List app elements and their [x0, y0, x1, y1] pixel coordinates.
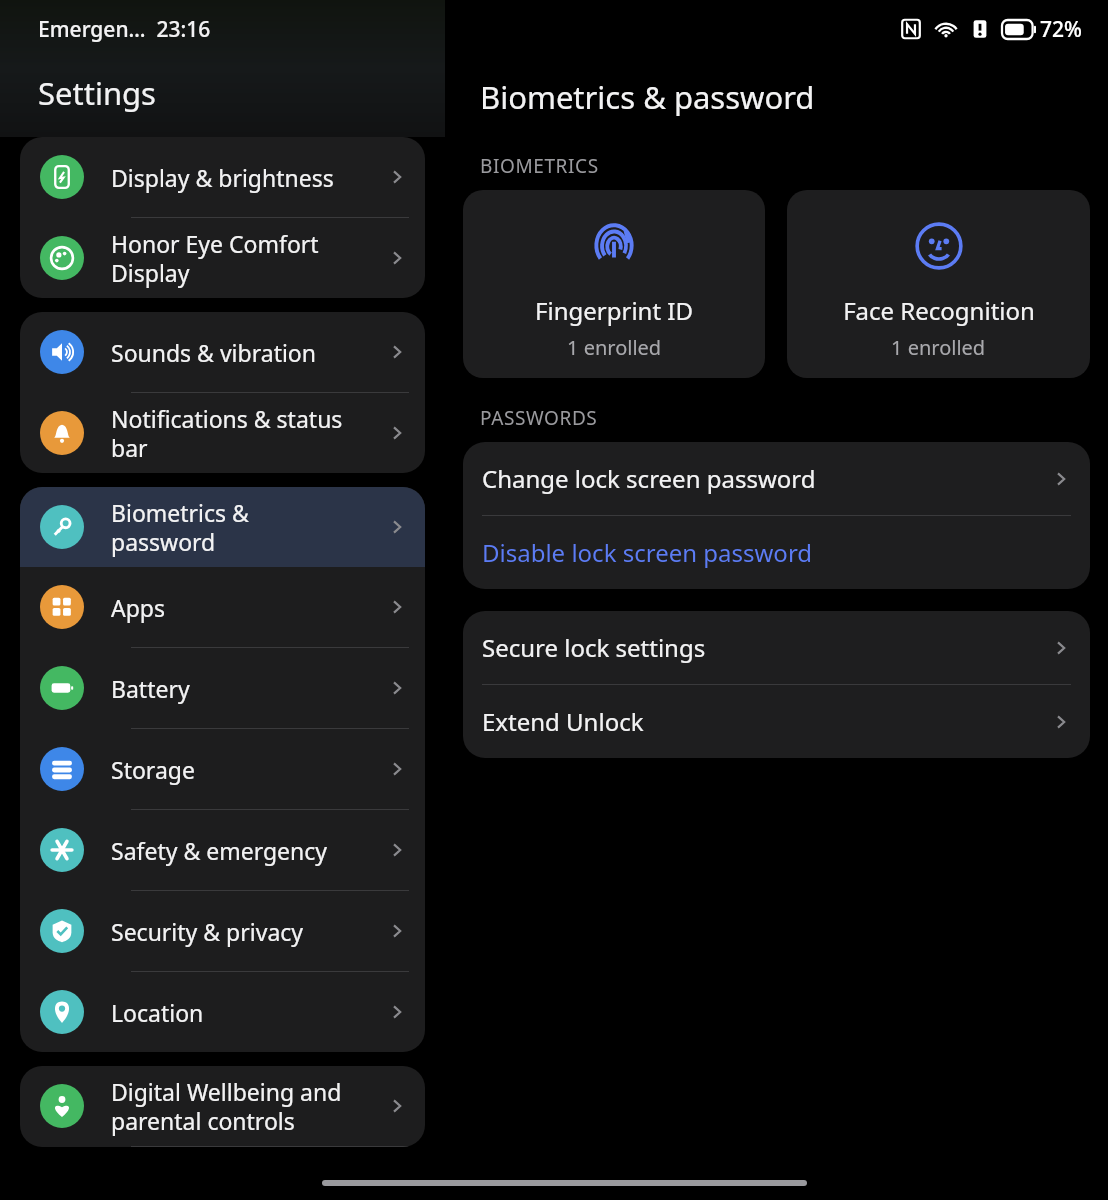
staticText: BIOMETRICS — [480, 153, 599, 179]
staticText: Biometrics & password — [111, 497, 387, 558]
button[interactable]: Location — [20, 972, 425, 1052]
button[interactable]: Secure lock settings — [463, 611, 1090, 684]
staticText: 72% — [1040, 15, 1082, 44]
staticText: Biometrics & password — [480, 76, 815, 118]
staticText: Safety & emergency — [111, 835, 387, 866]
staticText: Honor Eye Comfort Display — [111, 228, 387, 289]
staticText: Settings — [38, 72, 156, 114]
staticText: Change lock screen password — [482, 462, 1051, 495]
staticText: PASSWORDS — [480, 405, 598, 431]
staticText: Extend Unlock — [482, 705, 1051, 738]
button[interactable]: Honor Eye Comfort Display — [20, 218, 425, 298]
staticText: Battery — [111, 673, 387, 704]
button[interactable]: Notifications & status bar — [20, 393, 425, 473]
staticText: Location — [111, 997, 387, 1028]
button[interactable]: Extend Unlock — [463, 685, 1090, 758]
staticText: Disable lock screen password — [482, 536, 1071, 569]
button[interactable]: Change lock screen password — [463, 442, 1090, 515]
staticText: 1 enrolled — [891, 334, 986, 361]
button[interactable]: Safety & emergency — [20, 810, 425, 890]
staticText: Face Recognition — [843, 294, 1035, 327]
staticText: Fingerprint ID — [535, 294, 693, 327]
staticText: Emergen… 23:16 — [38, 15, 211, 44]
button[interactable]: Biometrics & password — [20, 487, 425, 567]
staticText: Apps — [111, 592, 387, 623]
button[interactable]: Digital Wellbeing and parental controls — [20, 1066, 425, 1146]
staticText: 1 enrolled — [567, 334, 662, 361]
button[interactable]: Apps — [20, 567, 425, 647]
button[interactable]: Storage — [20, 729, 425, 809]
button[interactable]: Security & privacy — [20, 891, 425, 971]
staticText: Security & privacy — [111, 916, 387, 947]
button[interactable]: Battery — [20, 648, 425, 728]
staticText: Sounds & vibration — [111, 337, 387, 368]
button[interactable]: Disable lock screen password — [463, 516, 1090, 589]
staticText: Secure lock settings — [482, 631, 1051, 664]
button[interactable]: Face Recognition — [787, 190, 1090, 378]
staticText: Notifications & status bar — [111, 403, 387, 464]
staticText: Storage — [111, 754, 387, 785]
button[interactable]: Fingerprint ID — [463, 190, 765, 378]
staticText: Digital Wellbeing and parental controls — [111, 1076, 387, 1137]
button[interactable]: Display & brightness — [20, 137, 425, 217]
staticText: Display & brightness — [111, 162, 387, 193]
button[interactable]: Sounds & vibration — [20, 312, 425, 392]
